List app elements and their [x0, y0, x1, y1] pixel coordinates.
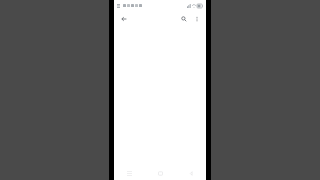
button[interactable]: Search: [178, 13, 189, 24]
button[interactable]: Home: [148, 166, 172, 180]
button[interactable]: Recent apps: [117, 166, 141, 180]
button[interactable]: More options: [191, 13, 202, 24]
button[interactable]: Back: [118, 13, 129, 24]
